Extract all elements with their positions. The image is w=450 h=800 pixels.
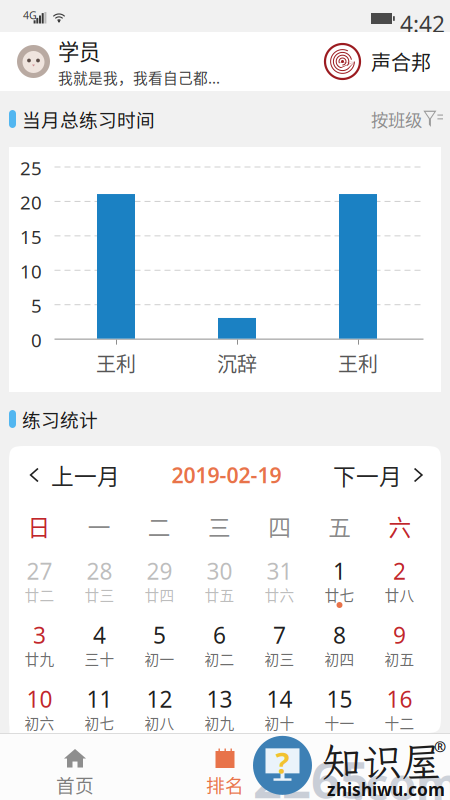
staticText: 10: [26, 684, 52, 714]
staticText: 11: [86, 684, 112, 714]
staticText: ?: [275, 743, 289, 782]
staticText: 6: [213, 620, 226, 650]
staticText: 13: [206, 684, 232, 714]
button[interactable]: 声合邦: [325, 44, 431, 79]
staticText: 当月总练习时间: [22, 105, 155, 132]
button[interactable]: 9: [369, 612, 429, 676]
staticText: 2: [393, 556, 406, 586]
staticText: 初八: [144, 712, 174, 733]
staticText: 初十: [264, 712, 294, 733]
staticText: 下一月: [333, 459, 402, 491]
button[interactable]: 27: [9, 548, 69, 612]
staticText: 初一: [144, 648, 174, 669]
button[interactable]: 上一月: [29, 459, 120, 491]
button[interactable]: 2: [369, 548, 429, 612]
staticText: 初四: [324, 648, 354, 669]
button[interactable]: 29: [129, 548, 189, 612]
staticText: 0: [31, 328, 42, 352]
button[interactable]: 7: [249, 612, 309, 676]
button[interactable]: 10: [9, 676, 69, 733]
staticText: 三: [208, 510, 231, 542]
button[interactable]: 30: [189, 548, 249, 612]
staticText: 学员: [58, 35, 100, 66]
staticText: 初二: [204, 648, 234, 669]
button[interactable]: 3: [9, 612, 69, 676]
button[interactable]: 4: [69, 612, 129, 676]
button[interactable]: 14: [249, 676, 309, 733]
staticText: 王利: [96, 349, 136, 378]
button[interactable]: 16: [369, 676, 429, 733]
staticText: 廿九: [24, 648, 54, 669]
staticText: 声合邦: [371, 47, 431, 76]
staticText: 7: [273, 620, 286, 650]
staticText: 1: [333, 556, 346, 586]
staticText: 15: [326, 684, 352, 714]
staticText: 8: [333, 620, 346, 650]
staticText: 31: [266, 556, 292, 586]
staticText: 20: [20, 190, 42, 215]
staticText: 排名: [206, 771, 244, 798]
staticText: 初七: [84, 712, 114, 733]
staticText: 知识屋: [322, 735, 442, 788]
button[interactable]: 排名: [150, 734, 300, 800]
staticText: 廿二: [24, 584, 54, 605]
staticText: 25: [20, 155, 42, 180]
staticText: 初六: [24, 712, 54, 733]
staticText: 2019-02-19: [171, 461, 281, 489]
staticText: 六: [388, 510, 411, 542]
staticText: 首页: [56, 771, 94, 798]
staticText: 廿七: [324, 584, 354, 605]
staticText: 上一月: [51, 459, 120, 491]
staticText: 廿五: [204, 584, 234, 605]
button[interactable]: 11: [69, 676, 129, 733]
staticText: 三十: [84, 648, 114, 669]
staticText: 练习统计: [22, 405, 98, 432]
staticText: 一: [88, 510, 111, 542]
staticText: 初三: [264, 648, 294, 669]
staticText: 10: [20, 259, 42, 284]
staticText: 沉辞: [217, 349, 257, 378]
button[interactable]: 1: [309, 548, 369, 612]
staticText: ®: [434, 737, 446, 756]
staticText: 3: [33, 620, 46, 650]
button[interactable]: 8: [309, 612, 369, 676]
staticText: 廿三: [84, 584, 114, 605]
button[interactable]: 学员: [17, 35, 220, 88]
button[interactable]: 13: [189, 676, 249, 733]
button[interactable]: 首页: [0, 734, 150, 800]
staticText: 4: [93, 620, 106, 650]
button[interactable]: 28: [69, 548, 129, 612]
staticText: 5: [153, 620, 166, 650]
staticText: 27: [26, 556, 52, 586]
staticText: 4G: [23, 8, 37, 22]
button[interactable]: 15: [309, 676, 369, 733]
staticText: 廿四: [144, 584, 174, 605]
staticText: 初九: [204, 712, 234, 733]
staticText: 9: [393, 620, 406, 650]
staticText: 30: [206, 556, 232, 586]
staticText: 按班级: [371, 106, 422, 132]
button[interactable]: 31: [249, 548, 309, 612]
staticText: 14: [266, 684, 292, 714]
staticText: 12: [146, 684, 172, 714]
staticText: 廿八: [384, 584, 414, 605]
button[interactable]: 按班级: [371, 106, 444, 132]
staticText: 4:42: [400, 9, 445, 39]
staticText: 王利: [338, 349, 378, 378]
button[interactable]: 12: [129, 676, 189, 733]
button[interactable]: 5: [129, 612, 189, 676]
staticText: 日: [28, 510, 51, 542]
staticText: 29: [146, 556, 172, 586]
staticText: 15: [20, 224, 42, 249]
button[interactable]: 下一月: [333, 459, 424, 491]
staticText: 我就是我，我看自己都...: [58, 67, 220, 88]
staticText: 五: [328, 510, 351, 542]
staticText: 十一: [324, 712, 354, 733]
staticText: 二: [148, 510, 171, 542]
staticText: 初五: [384, 648, 414, 669]
staticText: 5: [31, 293, 42, 318]
staticText: .com: [352, 753, 450, 800]
button[interactable]: 6: [189, 612, 249, 676]
staticText: 16: [386, 684, 412, 714]
staticText: 廿六: [264, 584, 294, 605]
